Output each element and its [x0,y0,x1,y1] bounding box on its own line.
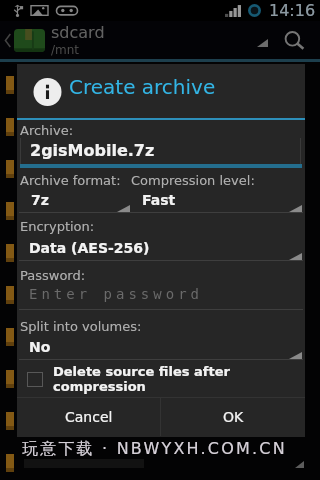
button[interactable]: Fast [130,187,303,213]
button[interactable]: Delete source files after compression [27,362,299,396]
staticText: Create archive [69,75,216,98]
button[interactable]: 2gisMobile.7z [19,138,303,168]
button[interactable] [0,400,320,442]
staticText: sdcard [51,23,105,42]
button[interactable]: sdcard [4,21,320,59]
staticText: Compression level: [131,173,255,188]
staticText: 14:16 [269,1,316,20]
staticText: Split into volumes: [20,319,142,334]
staticText: 2gisMobile.7z [30,141,155,160]
button[interactable]: Data (AES-256) [19,235,303,261]
button[interactable] [0,148,320,190]
button[interactable] [0,232,320,274]
button[interactable] [0,190,320,232]
staticText: Delete source files after compression [53,364,243,394]
button[interactable]: No [19,334,303,360]
staticText: Archive: [20,123,74,138]
button[interactable]: Search [280,21,310,59]
button[interactable] [0,316,320,358]
button[interactable]: Cancel [17,398,160,436]
staticText: No [29,339,51,355]
staticText: /mnt [51,43,80,57]
staticText: Password: [20,268,86,283]
staticText: 玩意下载 · NBWYXH.COM.CN [22,439,287,459]
button[interactable] [0,274,320,316]
staticText: Fast [142,192,176,208]
button[interactable]: OK [161,398,305,436]
staticText: Encryption: [20,219,95,234]
staticText: 7z [31,192,49,208]
staticText: Data (AES-256) [29,240,150,256]
staticText: Cancel [65,409,113,425]
button[interactable] [0,106,320,148]
button[interactable]: 7z [19,187,131,213]
button[interactable]: Enter password [19,283,303,310]
button[interactable] [0,64,320,106]
staticText: Archive format: [20,173,121,188]
button[interactable]: More options [250,21,274,59]
button[interactable] [0,358,320,400]
button[interactable] [0,442,320,480]
staticText: Enter password [29,286,204,302]
staticText: OK [223,409,244,425]
